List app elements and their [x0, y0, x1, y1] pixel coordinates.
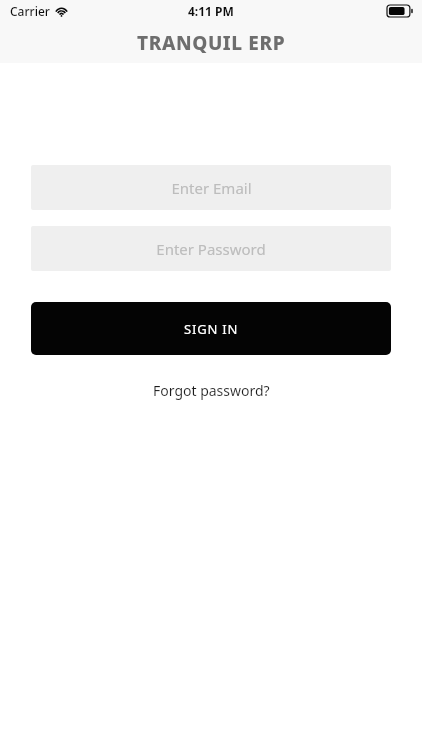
- staticText: Carrier: [10, 3, 50, 19]
- button[interactable]: SIGN IN: [31, 302, 391, 355]
- staticText: SIGN IN: [184, 320, 239, 338]
- staticText: Forgot password?: [153, 381, 270, 400]
- button[interactable]: Forgot password?: [143, 377, 280, 404]
- button[interactable]: Enter Email: [31, 165, 391, 210]
- button[interactable]: Enter Password: [31, 226, 391, 271]
- staticText: 4:11 PM: [188, 3, 234, 19]
- staticText: Enter Password: [156, 239, 266, 259]
- staticText: Enter Email: [171, 178, 252, 198]
- staticText: TRANQUIL ERP: [137, 30, 286, 56]
